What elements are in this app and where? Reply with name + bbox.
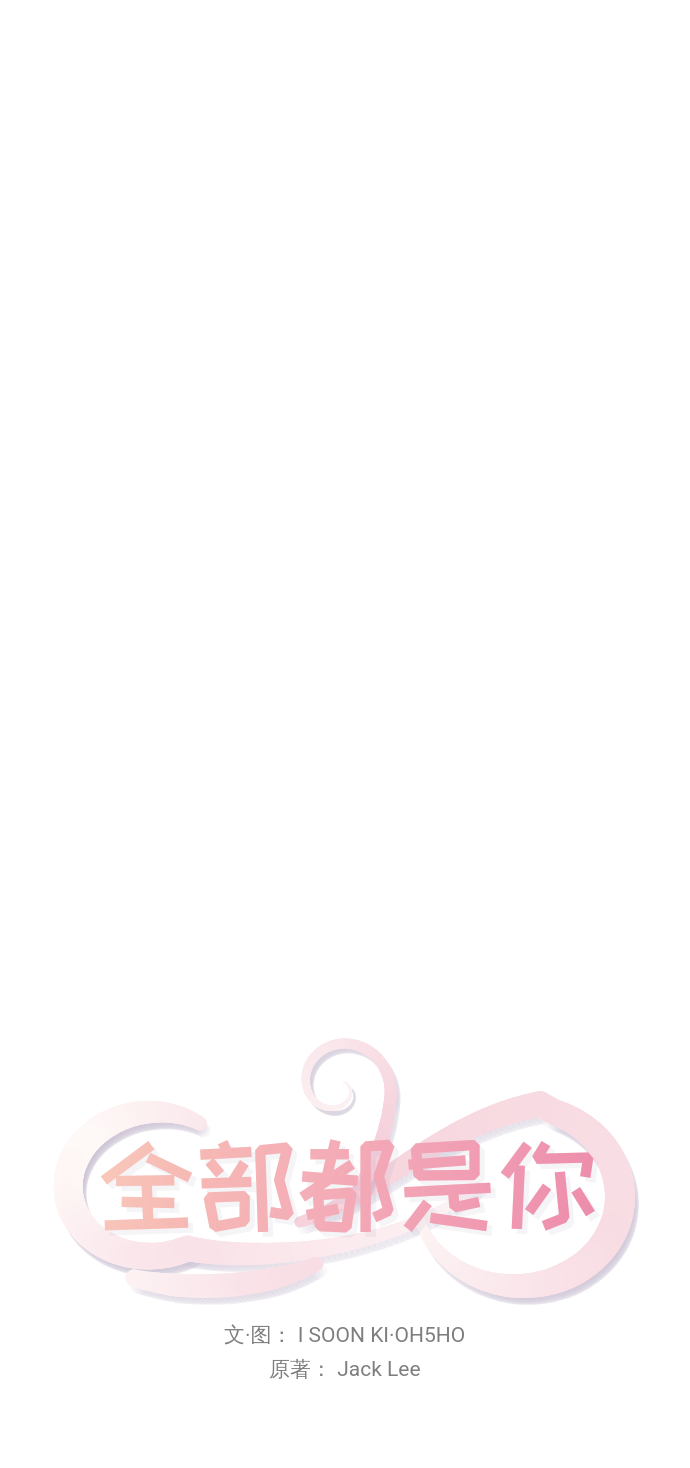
staticText: 全部都是你	[2, 1129, 690, 1238]
staticText: 文·图： I SOON KI·OH5HO	[224, 1322, 466, 1348]
staticText: 原著： Jack Lee	[269, 1356, 421, 1382]
staticText: 全部都是你	[7, 1134, 690, 1243]
